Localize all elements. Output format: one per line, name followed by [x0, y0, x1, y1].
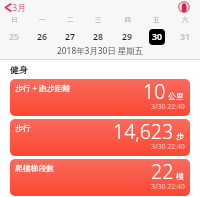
staticText: 四 — [124, 16, 131, 24]
staticText: 樓 — [176, 171, 184, 181]
staticText: 六 — [182, 16, 189, 24]
staticText: 29 — [122, 31, 133, 43]
staticText: 一 — [39, 16, 46, 24]
staticText: 30 — [152, 31, 163, 43]
staticText: 步行 + 跑步距離 — [15, 83, 71, 94]
button[interactable]: 步行 + 跑步距離 — [10, 79, 190, 116]
staticText: 爬樓梯段數 — [15, 163, 54, 173]
button[interactable]: 步行 — [10, 119, 190, 156]
button[interactable]: 26 — [28, 29, 56, 45]
staticText: 2018年3月30日 星期五 — [57, 45, 144, 56]
button[interactable]: 27 — [56, 29, 84, 45]
staticText: 3/30 22:40 — [151, 182, 185, 191]
button[interactable]: Profile — [178, 1, 190, 13]
button[interactable]: 30 — [142, 29, 171, 45]
staticText: 3/30 22:40 — [151, 142, 185, 151]
staticText: 26 — [37, 31, 48, 43]
staticText: 公里 — [168, 91, 184, 101]
staticText: 25 — [9, 31, 20, 43]
staticText: 27 — [65, 31, 76, 43]
staticText: 3月 — [12, 1, 27, 13]
staticText: 五 — [153, 16, 160, 24]
staticText: 步行 — [15, 123, 31, 133]
staticText: 3/30 22:40 — [151, 102, 185, 111]
staticText: 14,623 — [113, 119, 174, 145]
staticText: 28 — [93, 31, 104, 43]
button[interactable]: 29 — [113, 29, 142, 45]
staticText: 22 — [151, 159, 174, 185]
button[interactable]: 31 — [171, 29, 200, 45]
staticText: 日 — [11, 16, 18, 24]
staticText: 31 — [180, 31, 191, 43]
staticText: 三 — [95, 16, 102, 24]
button[interactable]: 爬樓梯段數 — [10, 159, 190, 196]
staticText: 健身 — [10, 65, 28, 76]
staticText: 步 — [176, 131, 184, 141]
button[interactable]: 28 — [84, 29, 113, 45]
staticText: 10 — [143, 79, 166, 105]
button[interactable]: 25 — [0, 29, 28, 45]
staticText: 二 — [67, 16, 74, 24]
button[interactable]: 3月 — [4, 0, 26, 14]
